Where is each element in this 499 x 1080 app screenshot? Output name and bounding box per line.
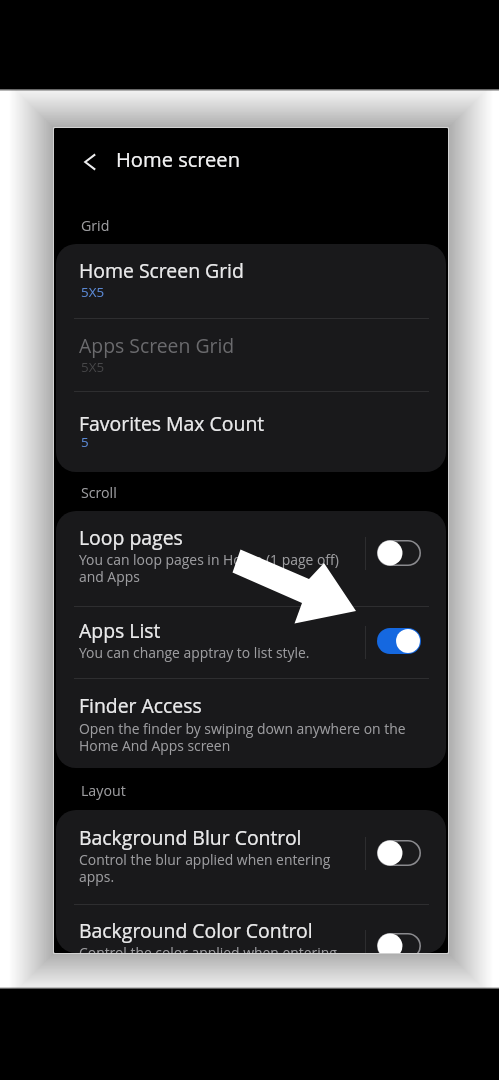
staticText: Scroll <box>81 483 117 502</box>
staticText: Background Blur Control <box>79 824 302 850</box>
button[interactable]: Toggle on <box>377 628 421 654</box>
staticText: Favorites Max Count <box>79 410 265 436</box>
button[interactable] <box>56 511 446 606</box>
button[interactable] <box>56 810 446 904</box>
staticText: Home screen <box>116 146 240 173</box>
staticText: Open the finder by swiping down anywhere… <box>79 719 414 755</box>
staticText: Grid <box>81 216 110 235</box>
staticText: Loop pages <box>79 524 183 550</box>
button[interactable]: Toggle off <box>377 540 421 566</box>
staticText: 5 <box>81 433 89 451</box>
staticText: Finder Access <box>79 692 202 718</box>
staticText: 5X5 <box>81 283 105 301</box>
staticText: Layout <box>81 781 126 800</box>
button[interactable]: Toggle off <box>377 933 421 953</box>
button[interactable] <box>56 244 446 318</box>
staticText: Apps List <box>79 617 161 643</box>
button[interactable] <box>56 391 446 472</box>
button[interactable]: Back <box>74 146 106 178</box>
staticText: You can change apptray to list style. <box>79 643 310 662</box>
staticText: Apps Screen Grid <box>79 332 235 358</box>
button[interactable] <box>56 606 446 678</box>
button[interactable] <box>56 318 446 391</box>
button[interactable] <box>56 904 446 953</box>
staticText: Background Color Control <box>79 917 313 943</box>
staticText: 5X5 <box>81 358 105 376</box>
button[interactable] <box>56 678 446 768</box>
button[interactable]: Toggle off <box>377 840 421 866</box>
staticText: Control the blur applied when entering a… <box>79 850 351 886</box>
staticText: You can loop pages in Home (1 page off) … <box>79 550 351 586</box>
staticText: Control the color applied when entering … <box>79 943 351 953</box>
staticText: Home Screen Grid <box>79 257 244 283</box>
